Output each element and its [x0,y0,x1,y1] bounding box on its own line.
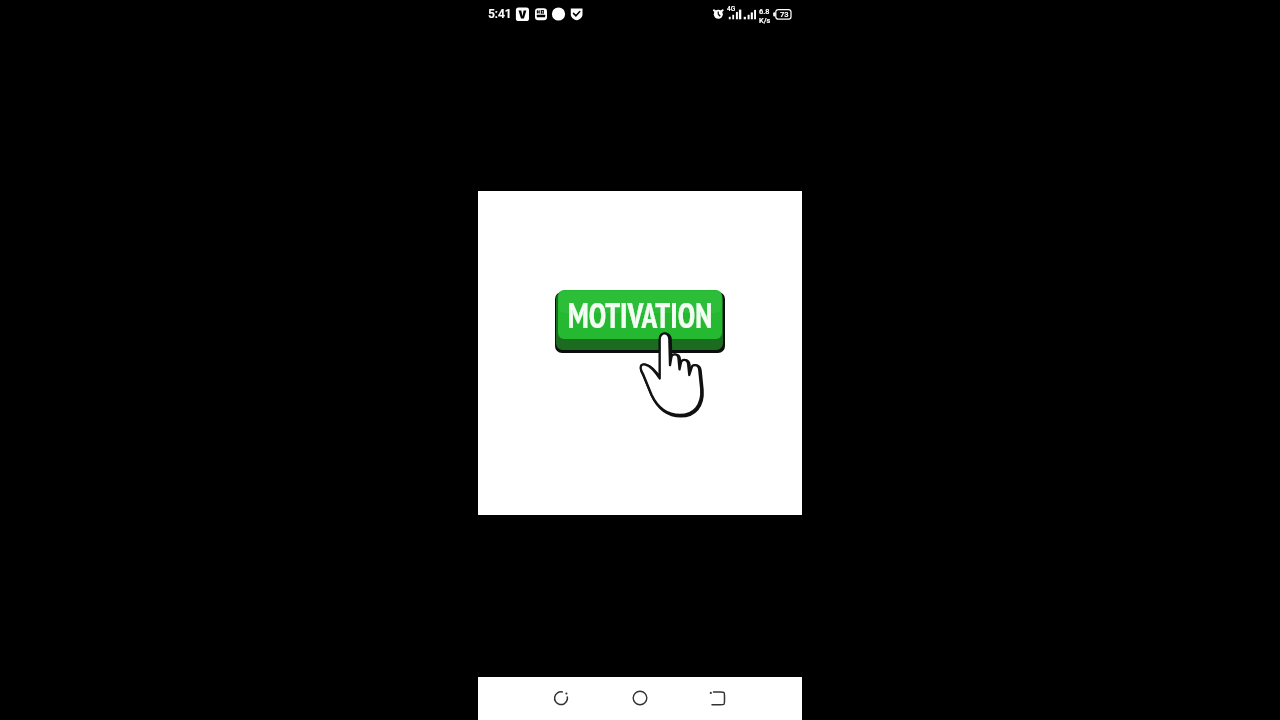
staticText: 4G [727,5,736,13]
button[interactable]: Recent apps [697,677,737,720]
button[interactable]: Home [620,677,660,720]
staticText: 73 [780,10,789,19]
other: Tap the button [478,191,802,515]
staticText: K/s [759,16,771,25]
staticText: 6.8 [759,7,770,16]
button[interactable]: Back [541,677,581,720]
button[interactable]: MOTIVATION [555,290,726,353]
staticText: 5:41 [488,7,512,21]
staticText: MOTIVATION [565,293,715,338]
